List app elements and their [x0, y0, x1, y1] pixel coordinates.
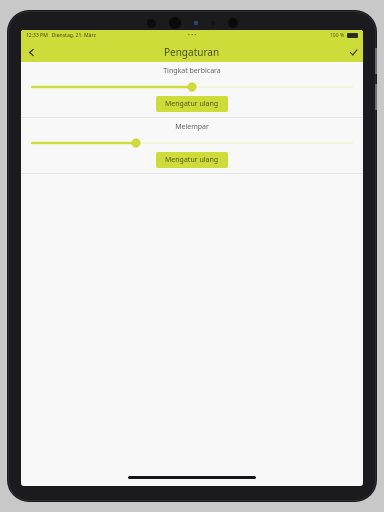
staticText: Mengatur ulang [165, 99, 219, 109]
button[interactable]: Back [21, 42, 41, 62]
staticText: Melempar [175, 122, 209, 132]
staticText: • • • [188, 32, 197, 39]
button[interactable]: Mengatur ulang [156, 152, 228, 168]
staticText: Pengaturan [164, 45, 220, 59]
button[interactable] [32, 81, 352, 93]
staticText: Mengatur ulang [165, 155, 219, 165]
button[interactable]: Done [343, 42, 363, 62]
staticText: 100 % [330, 32, 345, 39]
button[interactable]: Mengatur ulang [156, 96, 228, 112]
staticText: 12:33 PM Dienstag, 21. März [26, 32, 96, 39]
staticText: Tingkat berbicara [163, 66, 221, 76]
button[interactable] [32, 137, 352, 149]
